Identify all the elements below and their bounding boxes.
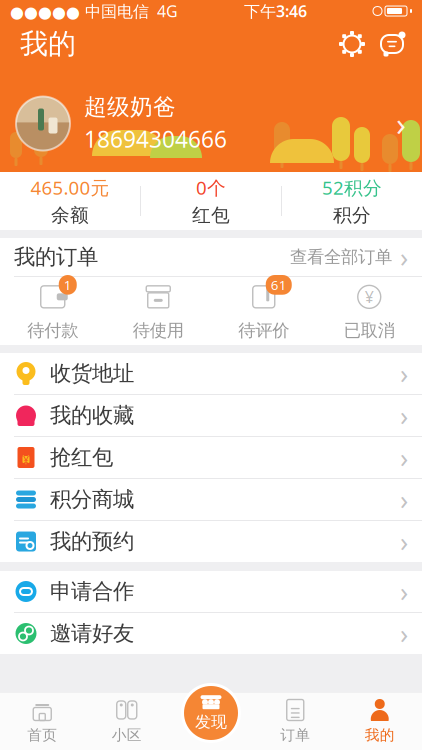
staticText: › — [400, 356, 408, 391]
button[interactable]: 超级奶爸 — [0, 93, 422, 154]
button[interactable]: 我的 — [337, 692, 422, 750]
staticText: 待评价 — [238, 320, 289, 341]
button[interactable]: 0个 — [141, 172, 281, 230]
button[interactable]: 申请合作 — [0, 571, 422, 612]
staticText: 我的预约 — [50, 528, 134, 555]
staticText: 小区 — [112, 726, 142, 744]
staticText: 我的订单 — [14, 244, 98, 270]
button[interactable]: 订单 — [253, 692, 337, 750]
staticText: 积分商城 — [50, 486, 134, 513]
button[interactable]: 邀请好友 — [0, 613, 422, 654]
staticText: 0个 — [196, 175, 226, 200]
button[interactable]: 我的收藏 — [0, 395, 422, 436]
staticText: ●●●●● 中国电信 4G — [10, 0, 178, 22]
staticText: › — [400, 524, 408, 559]
staticText: 待使用 — [133, 320, 184, 341]
staticText: 抢红包 — [50, 444, 113, 471]
button[interactable]: 52积分 — [282, 172, 422, 230]
staticText: › — [400, 440, 408, 475]
button[interactable]: ¥ — [0, 437, 422, 478]
staticText: ¥ — [22, 451, 29, 467]
staticText: › — [400, 616, 408, 651]
staticText: 我的 — [365, 726, 395, 744]
staticText: 52积分 — [322, 175, 382, 200]
staticText: ¥ — [23, 452, 29, 467]
staticText: › — [400, 482, 408, 517]
staticText: 余额 — [51, 204, 89, 227]
staticText: 查看全部订单 — [290, 246, 392, 268]
button[interactable]: ¥ — [316, 277, 422, 345]
staticText: › — [400, 239, 408, 275]
button[interactable]: 设置 — [332, 24, 372, 64]
staticText: 18694304666 — [84, 124, 227, 154]
staticText: 订单 — [280, 726, 310, 744]
staticText: 61 — [271, 276, 287, 294]
staticText: 待付款 — [27, 320, 78, 341]
staticText: 我的收藏 — [50, 402, 134, 429]
button[interactable]: 61 — [211, 277, 316, 345]
staticText: › — [396, 102, 406, 145]
staticText: 超级奶爸 — [84, 93, 176, 121]
staticText: › — [400, 398, 408, 433]
staticText: 1 — [64, 276, 72, 294]
staticText: › — [400, 574, 408, 609]
button[interactable]: 首页 — [0, 692, 84, 750]
staticText: ¥ — [365, 286, 374, 307]
staticText: 下午3:46 — [244, 0, 307, 22]
button[interactable]: 我的预约 — [0, 521, 422, 562]
button[interactable]: 我的订单 — [0, 238, 422, 276]
staticText: 红包 — [192, 204, 230, 227]
button[interactable]: 发现 — [180, 682, 242, 744]
staticText: 已取消 — [344, 320, 395, 341]
staticText: 邀请好友 — [50, 620, 134, 647]
button[interactable]: 小区 — [84, 692, 169, 750]
button[interactable]: 1 — [0, 277, 105, 345]
staticText: 申请合作 — [50, 578, 134, 605]
button[interactable]: 465.00元 — [0, 172, 140, 230]
staticText: 积分 — [333, 204, 371, 227]
button[interactable]: 消息 — [372, 24, 412, 64]
staticText: 发现 — [195, 712, 227, 732]
staticText: 465.00元 — [30, 175, 109, 200]
staticText: 我的 — [20, 27, 76, 61]
staticText: 收货地址 — [50, 360, 134, 387]
button[interactable]: 收货地址 — [0, 353, 422, 394]
button[interactable]: 积分商城 — [0, 479, 422, 520]
button[interactable]: 待使用 — [105, 277, 211, 345]
staticText: 首页 — [27, 726, 57, 744]
